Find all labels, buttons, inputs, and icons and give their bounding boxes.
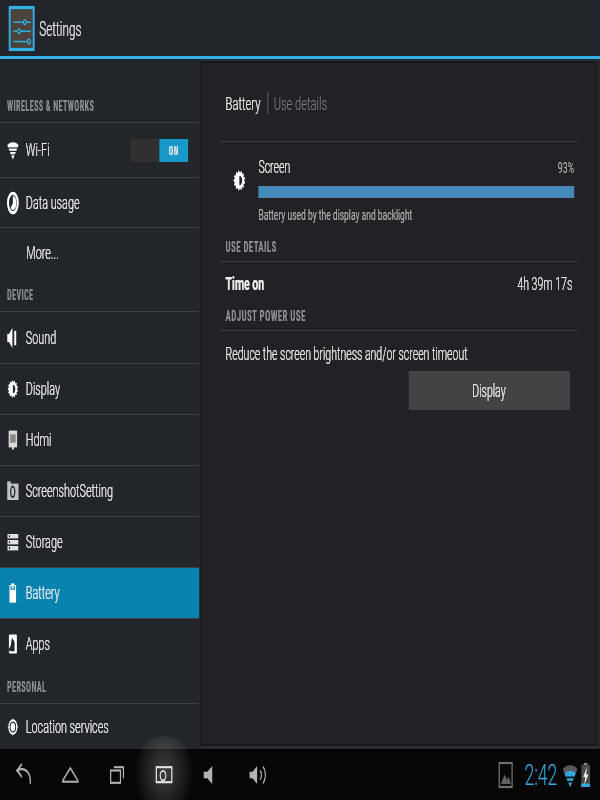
staticText: Sound [26, 327, 56, 349]
button[interactable]: Sound [0, 312, 199, 363]
staticText: ScreenshotSetting [26, 480, 113, 502]
staticText: 2:42 [524, 757, 558, 792]
button[interactable]: ON [130, 139, 188, 162]
staticText: Display [26, 378, 60, 400]
staticText: Location services [26, 716, 109, 738]
staticText: 4h 39m 17s [517, 273, 572, 294]
button[interactable]: More... [0, 228, 199, 277]
staticText: Display [472, 380, 506, 401]
staticText: Storage [26, 531, 63, 553]
staticText: 93% [558, 159, 574, 177]
staticText: Reduce the screen brightness and/or scre… [226, 343, 468, 364]
button[interactable]: Wi-Fi [0, 123, 199, 177]
staticText: PERSONAL [7, 679, 47, 695]
staticText: USE DETAILS [226, 238, 277, 256]
staticText: Battery [26, 582, 60, 604]
staticText: Screen [258, 156, 291, 177]
button[interactable]: Storage [0, 517, 199, 567]
staticText: DEVICE [7, 287, 34, 303]
staticText: More... [26, 242, 59, 264]
button[interactable]: Screenshot [141, 749, 187, 800]
button[interactable]: Recent apps [94, 749, 141, 800]
button[interactable]: Location services [0, 704, 199, 749]
button[interactable]: Display [408, 371, 570, 410]
staticText: ON [169, 143, 179, 158]
staticText: Apps [26, 633, 50, 655]
staticText: Use details [274, 92, 327, 114]
button[interactable]: Volume up [234, 749, 281, 800]
button[interactable]: Apps [0, 619, 199, 669]
button[interactable]: Hdmi [0, 415, 199, 465]
button[interactable]: ScreenshotSetting [0, 466, 199, 516]
staticText: Settings [39, 17, 81, 40]
staticText: ADJUST POWER USE [226, 307, 306, 325]
other: Settings [9, 6, 35, 51]
button[interactable]: Battery [0, 568, 199, 618]
staticText: Wi-Fi [26, 139, 50, 161]
button[interactable]: Data usage [0, 178, 199, 227]
staticText: Data usage [26, 192, 80, 214]
staticText: Hdmi [26, 429, 52, 451]
staticText: Time on [226, 273, 264, 294]
button[interactable]: Home [47, 749, 94, 800]
staticText: Battery [226, 92, 261, 114]
staticText: WIRELESS & NETWORKS [7, 98, 94, 114]
staticText: Battery used by the display and backligh… [258, 207, 412, 224]
button[interactable]: Back [0, 749, 47, 800]
button[interactable]: Display [0, 364, 199, 414]
button[interactable]: Volume down [187, 749, 234, 800]
